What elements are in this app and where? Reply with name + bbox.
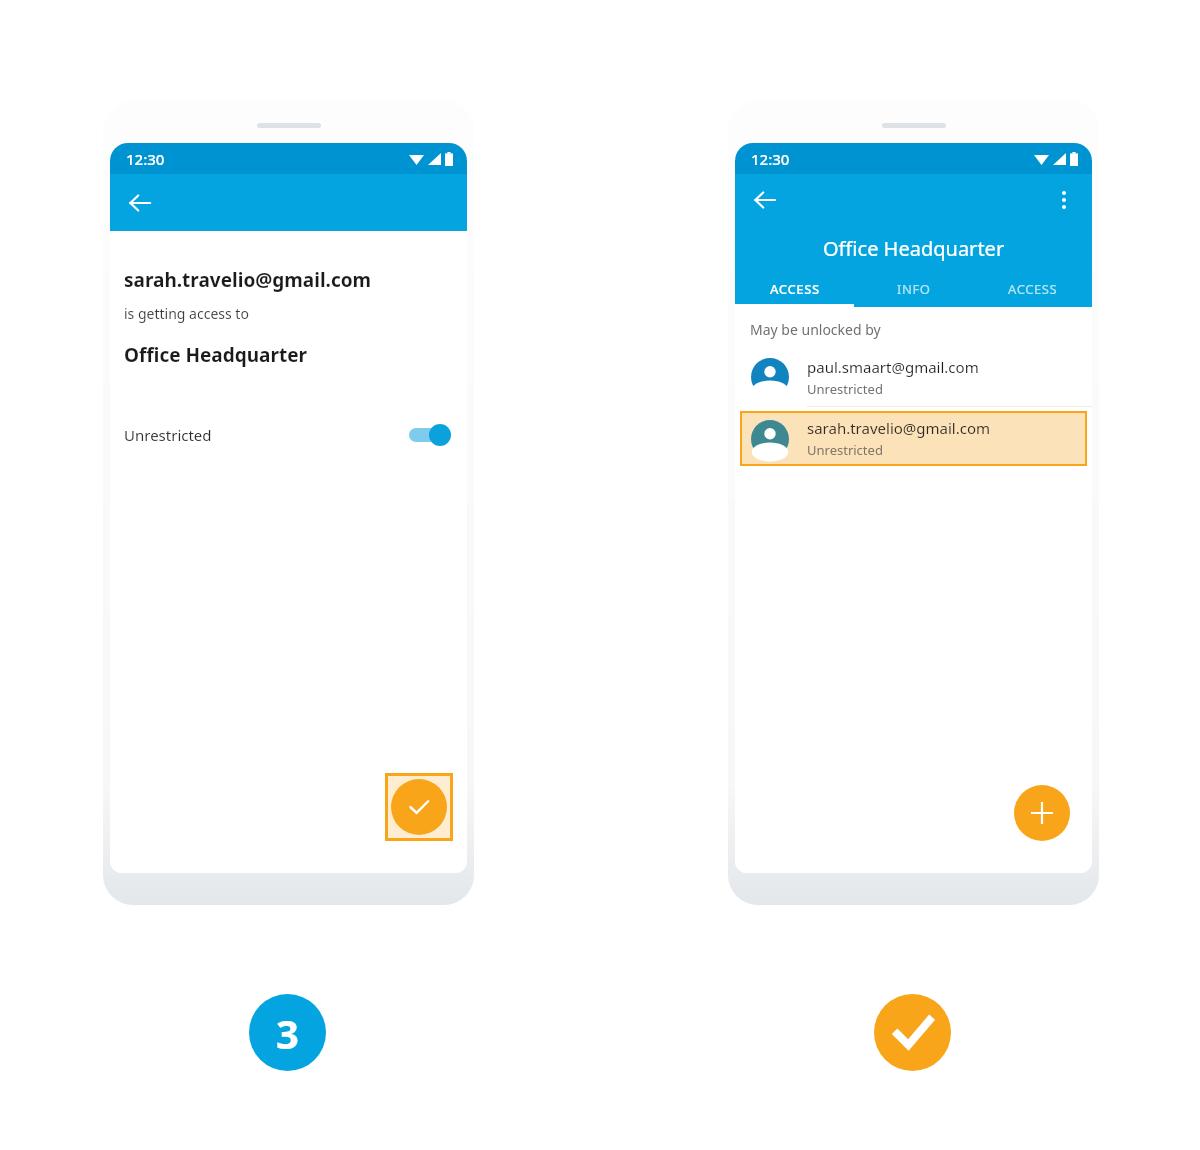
staticText: Unrestricted bbox=[807, 441, 883, 459]
staticText: Office Headquarter bbox=[823, 235, 1005, 262]
staticText: is getting access to bbox=[124, 304, 249, 323]
button[interactable]: INFO bbox=[854, 270, 973, 307]
staticText: 12:30 bbox=[751, 149, 790, 169]
button[interactable]: More options bbox=[1044, 180, 1084, 220]
staticText: 3 bbox=[276, 1006, 299, 1060]
staticText: sarah.travelio@gmail.com bbox=[124, 267, 372, 293]
staticText: May be unlocked by bbox=[750, 320, 881, 339]
button[interactable]: sarah.travelio@gmail.com bbox=[740, 411, 1087, 466]
button[interactable]: Unrestricted bbox=[110, 415, 467, 455]
staticText: ACCESS bbox=[770, 280, 820, 298]
button[interactable]: paul.smaart@gmail.com bbox=[735, 348, 1092, 406]
button[interactable]: Add bbox=[1014, 785, 1070, 841]
staticText: Unrestricted bbox=[807, 380, 883, 398]
button[interactable]: Confirm bbox=[391, 779, 447, 835]
button[interactable]: Back bbox=[120, 183, 160, 223]
staticText: 12:30 bbox=[126, 149, 165, 169]
staticText: paul.smaart@gmail.com bbox=[807, 357, 979, 377]
button[interactable]: ACCESS bbox=[735, 270, 854, 307]
staticText: sarah.travelio@gmail.com bbox=[807, 418, 991, 438]
staticText: INFO bbox=[897, 280, 931, 298]
staticText: Office Headquarter bbox=[124, 342, 308, 368]
button[interactable]: ACCESS bbox=[973, 270, 1092, 307]
staticText: ACCESS bbox=[1008, 280, 1058, 298]
staticText: Unrestricted bbox=[124, 425, 212, 445]
button[interactable]: Back bbox=[745, 180, 785, 220]
